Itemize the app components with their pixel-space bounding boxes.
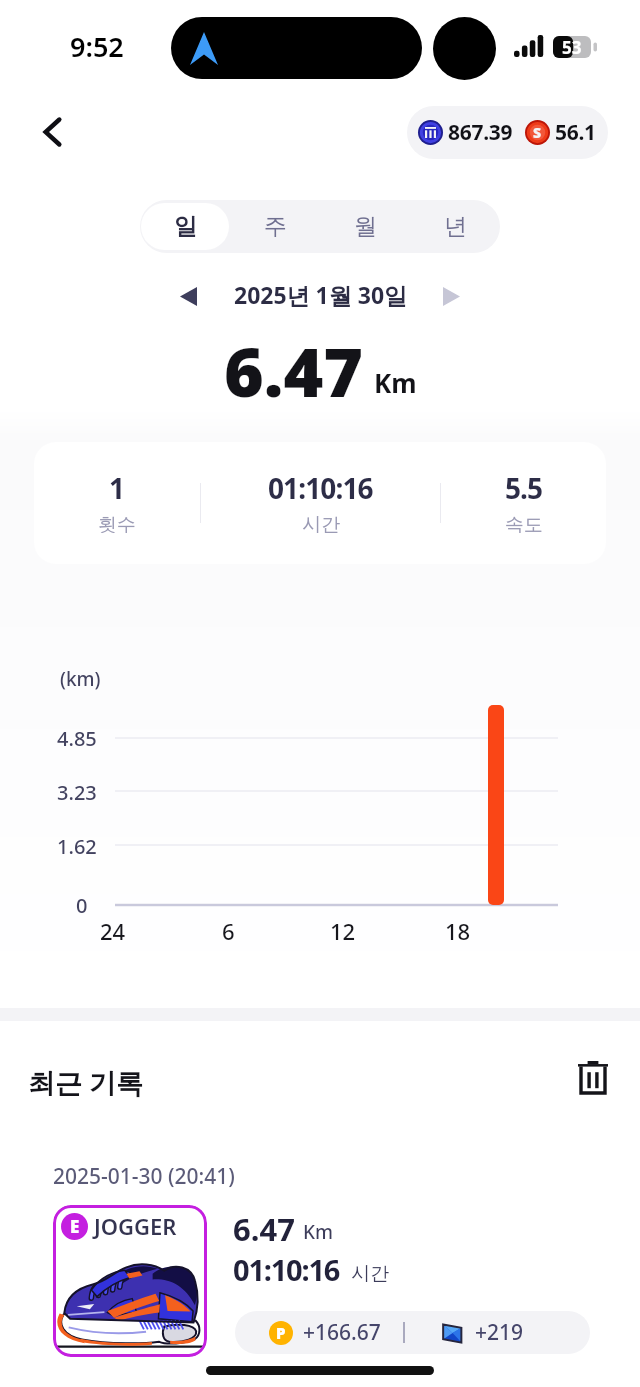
button[interactable]: Delete records: [568, 1053, 618, 1103]
staticText: 1: [109, 469, 125, 507]
staticText: 주: [264, 212, 287, 241]
staticText: 6: [222, 916, 235, 946]
staticText: 최근 기록: [28, 1064, 144, 1101]
staticText: 01:10:16: [233, 1250, 340, 1289]
button[interactable]: 주: [231, 203, 319, 250]
staticText: 일: [174, 212, 197, 241]
staticText: E: [70, 1215, 80, 1238]
staticText: 867.39: [448, 118, 513, 147]
staticText: 9:52: [70, 28, 124, 65]
button[interactable]: Previous day: [168, 276, 208, 316]
staticText: 월: [354, 212, 377, 241]
staticText: 18: [445, 916, 471, 946]
staticText: 24: [100, 916, 126, 946]
staticText: S: [533, 123, 542, 142]
staticText: 01:10:16: [268, 469, 373, 507]
staticText: 4.85: [57, 725, 97, 752]
staticText: P: [276, 1323, 286, 1343]
staticText: 시간: [302, 513, 340, 537]
staticText: 6.47: [224, 324, 364, 417]
staticText: 53: [562, 36, 582, 58]
button[interactable]: 년: [411, 203, 499, 250]
staticText: 횟수: [98, 513, 136, 537]
button[interactable]: 월: [321, 203, 409, 250]
button[interactable]: 일: [141, 203, 229, 250]
staticText: 56.1: [555, 118, 596, 147]
staticText: 6.47: [233, 1208, 295, 1250]
staticText: 시간: [351, 1262, 389, 1286]
button[interactable]: Back: [28, 108, 76, 156]
staticText: Km: [374, 365, 417, 400]
staticText: +166.67: [303, 1318, 381, 1347]
button[interactable]: 최근 기록: [28, 1060, 144, 1104]
button[interactable]: Next day: [431, 276, 471, 316]
staticText: Km: [303, 1219, 334, 1245]
staticText: 12: [330, 916, 356, 946]
staticText: 5.5: [505, 469, 543, 507]
staticText: +219: [475, 1318, 524, 1347]
staticText: 3.23: [57, 779, 97, 806]
staticText: 년: [444, 212, 467, 241]
staticText: 1.62: [57, 833, 97, 860]
staticText: 속도: [505, 513, 543, 537]
button[interactable]: 867.39: [407, 106, 608, 159]
staticText: 2025-01-30 (20:41): [53, 1162, 235, 1191]
staticText: 2025년 1월 30일: [234, 279, 408, 310]
staticText: 0: [76, 892, 88, 919]
button[interactable]: [32, 1143, 608, 1387]
button[interactable]: P: [235, 1311, 590, 1354]
staticText: JOGGER: [94, 1211, 177, 1241]
staticText: (km): [60, 666, 101, 692]
